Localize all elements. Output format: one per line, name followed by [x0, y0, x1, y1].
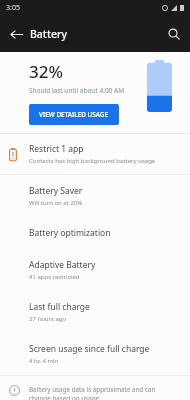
staticText: 3:05: [6, 3, 20, 13]
button[interactable]: Battery optimization: [0, 217, 190, 249]
staticText: Battery: [30, 27, 67, 41]
staticText: 32%: [29, 60, 63, 83]
staticText: Battery Saver: [29, 185, 83, 197]
button[interactable]: Adaptive Battery: [0, 249, 190, 291]
staticText: Contacts has high background battery usa…: [29, 157, 156, 165]
staticText: Restrict 1 app: [29, 143, 84, 155]
staticText: VIEW DETAILED USAGE: [39, 110, 109, 119]
staticText: Battery usage data is approximate and ca…: [29, 385, 174, 400]
button[interactable]: Last full charge: [0, 291, 190, 333]
staticText: 4 hr, 4 min: [29, 357, 59, 365]
button[interactable]: Restrict 1 app: [0, 134, 190, 174]
staticText: Last full charge: [29, 301, 90, 313]
staticText: Should last until about 4:00 AM: [29, 86, 125, 95]
staticText: Screen usage since full charge: [29, 343, 150, 355]
staticText: Will turn on at 20%: [29, 199, 83, 207]
button[interactable]: Search: [161, 21, 187, 47]
staticText: 41 apps restricted: [29, 273, 80, 281]
button[interactable]: Battery Saver: [0, 175, 190, 217]
staticText: 27 hours ago: [29, 315, 67, 323]
button[interactable]: Back: [3, 21, 29, 47]
button[interactable]: Screen usage since full charge: [0, 333, 190, 375]
staticText: Adaptive Battery: [29, 259, 96, 271]
staticText: Battery optimization: [29, 227, 111, 239]
button[interactable]: VIEW DETAILED USAGE: [29, 104, 119, 125]
